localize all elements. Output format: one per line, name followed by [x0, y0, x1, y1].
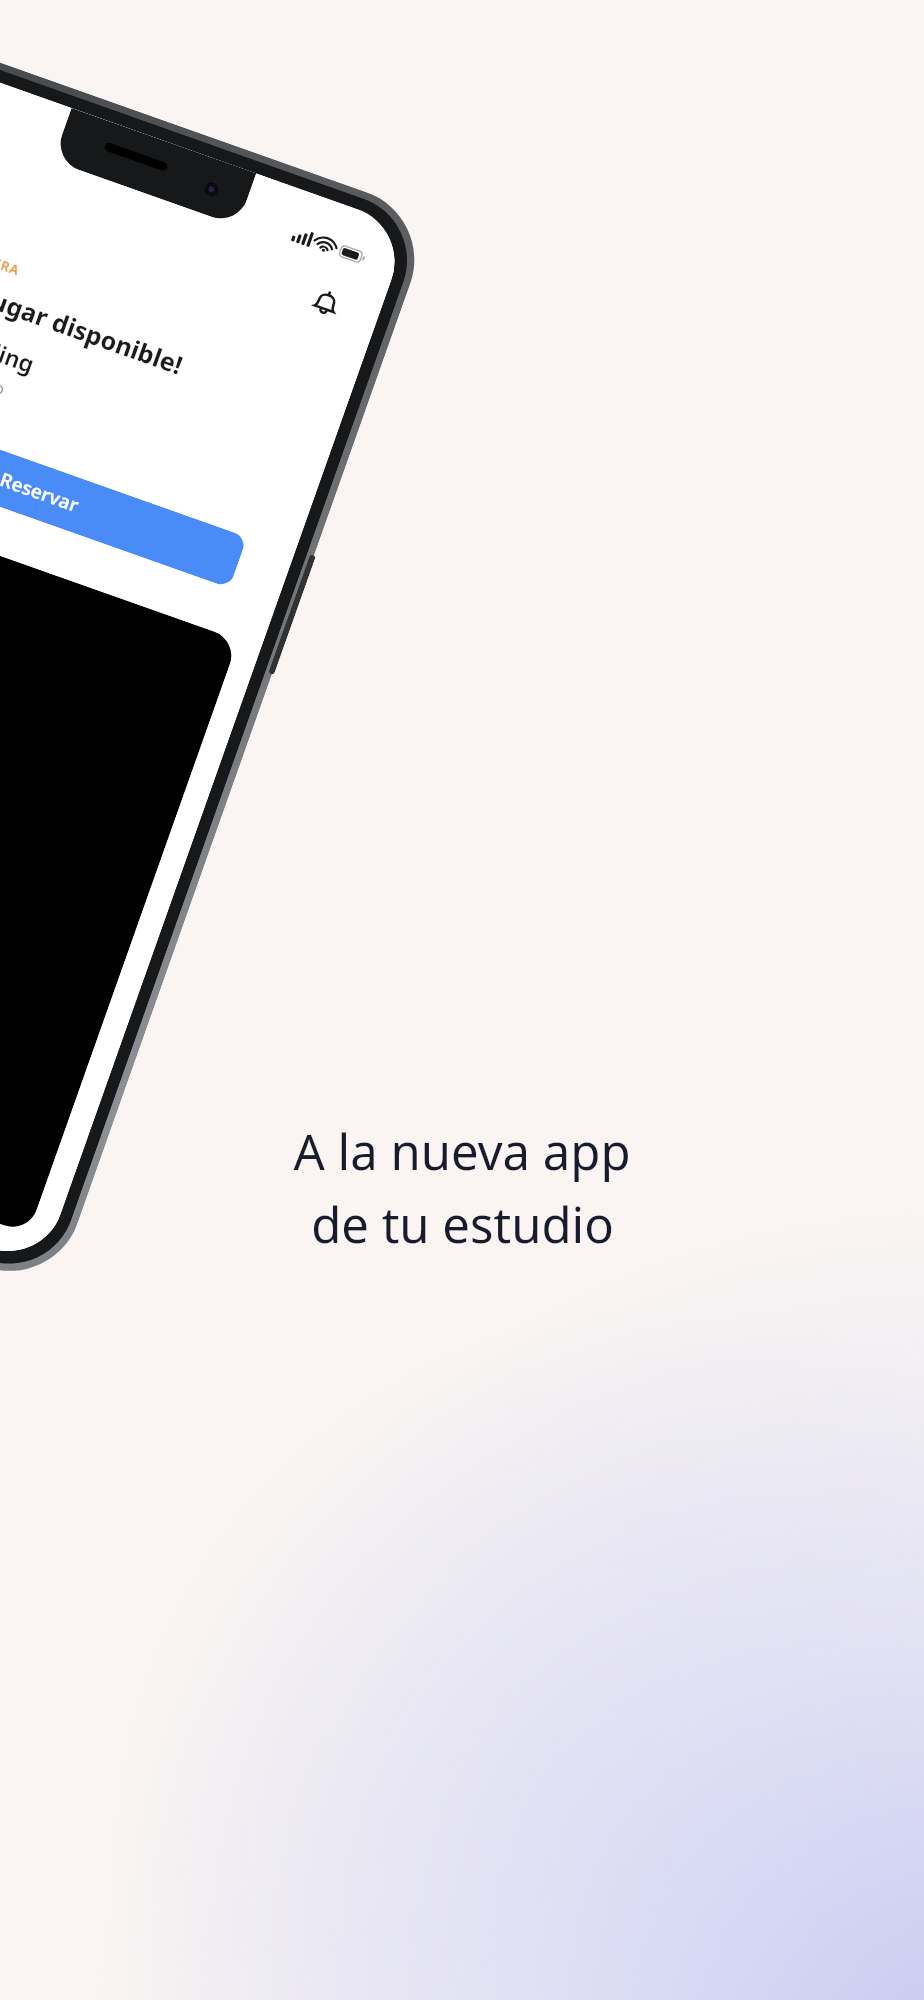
button[interactable]: LISTA DE ESPERA — [0, 190, 342, 621]
staticText: Reservar — [0, 466, 82, 518]
staticText: A la nueva app — [293, 1118, 631, 1185]
button[interactable] — [0, 482, 238, 1234]
button[interactable]: Reservar — [0, 396, 247, 588]
staticText: LISTA DE ESPERA — [0, 223, 23, 280]
staticText: Indoor Cycling — [0, 295, 39, 379]
staticText: Jueves, 23 de mayo — [0, 331, 8, 400]
button[interactable]: Notifications — [293, 270, 359, 336]
staticText: ¡Nuevo lugar disponible! — [0, 248, 188, 381]
staticText: de tu estudio — [311, 1191, 614, 1258]
